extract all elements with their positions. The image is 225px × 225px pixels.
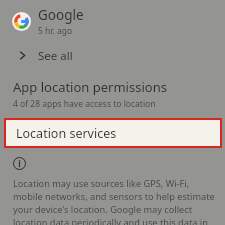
staticText: See all xyxy=(38,48,73,64)
staticText: Google xyxy=(38,6,84,24)
button[interactable]: Google xyxy=(0,0,225,42)
other: Information xyxy=(13,157,26,170)
button[interactable]: Location services xyxy=(6,120,220,146)
button[interactable]: App location permissions xyxy=(0,74,225,114)
other: See all xyxy=(18,51,27,60)
staticText: App location permissions xyxy=(13,78,167,96)
staticText: Location services xyxy=(16,125,117,142)
staticText: 4 of 28 apps have access to location xyxy=(13,98,156,110)
staticText: Location may use sources like GPS, Wi-Fi… xyxy=(13,177,218,225)
button[interactable]: See all xyxy=(0,42,225,69)
staticText: 5 hr. ago xyxy=(38,25,73,37)
